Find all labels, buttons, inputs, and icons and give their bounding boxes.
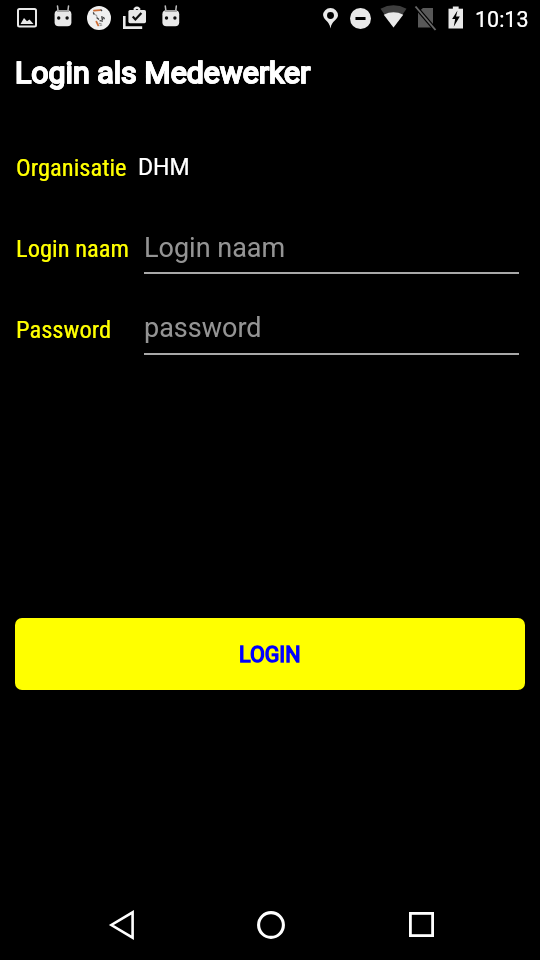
staticText: DHM bbox=[138, 154, 190, 181]
staticText: LOGIN bbox=[239, 642, 301, 667]
staticText: 10:13 bbox=[475, 7, 529, 32]
button[interactable]: Login naam bbox=[144, 228, 519, 275]
staticText: Login naam bbox=[16, 234, 129, 263]
staticText: LOGIN bbox=[239, 642, 301, 667]
staticText: Login als Medewerker bbox=[15, 55, 311, 91]
staticText: Login als Medewerker bbox=[15, 55, 311, 91]
staticText: Login naam bbox=[144, 232, 286, 264]
staticText: Organisatie bbox=[16, 153, 127, 182]
button[interactable]: Recent apps bbox=[390, 889, 452, 960]
button[interactable]: password bbox=[144, 309, 519, 356]
staticText: password bbox=[144, 312, 262, 344]
button[interactable]: Back bbox=[90, 889, 153, 960]
button[interactable]: LOGIN bbox=[15, 618, 525, 690]
staticText: Password bbox=[16, 315, 112, 344]
button[interactable]: Home bbox=[240, 889, 302, 960]
